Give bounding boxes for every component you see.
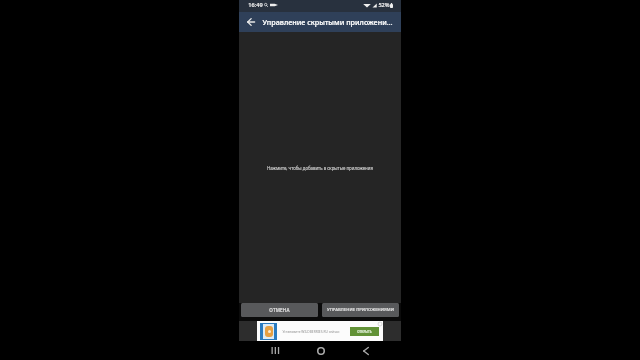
staticText: Установите WILDBERRIES.RU сейчас <box>282 329 340 333</box>
button[interactable]: Назад <box>239 12 262 32</box>
button[interactable]: ОТКРЫТЬ <box>350 327 379 336</box>
button[interactable]: УПРАВЛЕНИЕ ПРИЛОЖЕНИЯМИ <box>322 303 399 317</box>
staticText: Нажмите, чтобы добавить в скрытые прилож… <box>267 165 373 171</box>
button[interactable]: Домой <box>309 341 333 360</box>
staticText: ОТКРЫТЬ <box>357 330 372 334</box>
staticText: ОТМЕНА <box>269 307 290 313</box>
button[interactable]: Недавние приложения <box>263 341 287 360</box>
staticText: УПРАВЛЕНИЕ ПРИЛОЖЕНИЯМИ <box>327 307 394 313</box>
button[interactable]: Закрыть рекламу <box>377 321 383 327</box>
staticText: Управление скрытыми приложени… <box>262 17 393 27</box>
button[interactable]: Установите WILDBERRIES.RU сейчас <box>257 321 383 341</box>
button[interactable]: Назад <box>354 341 378 360</box>
button[interactable]: ОТМЕНА <box>241 303 318 317</box>
staticText: 52% <box>378 1 390 9</box>
staticText: 16:49 <box>248 1 263 9</box>
